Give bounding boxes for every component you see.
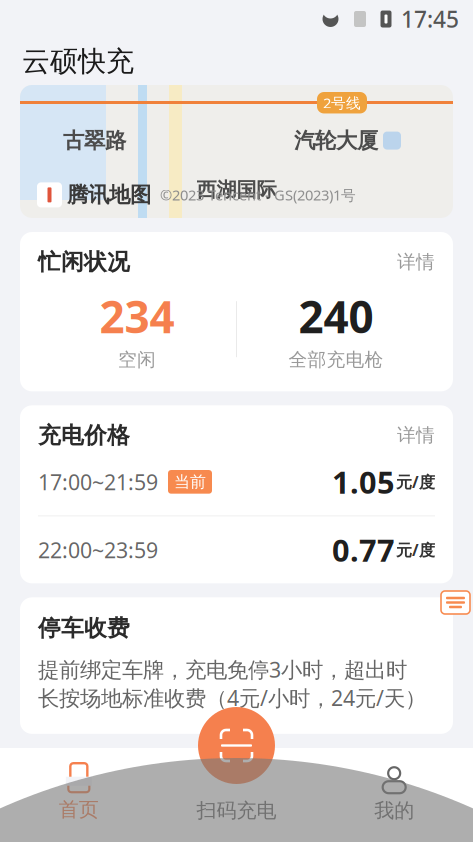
staticText: 扫码充电 bbox=[196, 798, 276, 823]
staticText: 汽轮大厦 bbox=[294, 127, 378, 154]
staticText: 详情 bbox=[397, 250, 435, 273]
staticText: 首页 bbox=[59, 797, 99, 822]
button[interactable]: 扫码充电 bbox=[198, 707, 275, 784]
staticText: 云硕快充 bbox=[22, 44, 134, 79]
staticText: 西湖国际 bbox=[196, 178, 276, 202]
staticText: 0.77 bbox=[332, 529, 395, 570]
staticText: ©2023 Tencent - GS(2023)1号 bbox=[160, 185, 356, 205]
staticText: 空闲 bbox=[118, 348, 156, 371]
button[interactable]: 详情 bbox=[397, 424, 435, 447]
staticText: 我的 bbox=[374, 798, 414, 823]
staticText: 详情 bbox=[397, 424, 435, 447]
staticText: 元/度 bbox=[396, 539, 435, 560]
staticText: 234 bbox=[99, 287, 174, 345]
staticText: 停车收费 bbox=[38, 614, 130, 642]
staticText: 元/度 bbox=[396, 471, 435, 492]
staticText: 当前 bbox=[174, 472, 206, 492]
staticText: 1.05 bbox=[332, 461, 395, 502]
staticText: 全部充电枪 bbox=[288, 348, 383, 371]
staticText: 古翠路 bbox=[63, 127, 126, 154]
button[interactable]: 我的 bbox=[315, 748, 473, 842]
staticText: 腾讯地图 bbox=[67, 182, 151, 208]
button[interactable]: Keyboard bbox=[441, 591, 470, 614]
staticText: 22:00~23:59 bbox=[38, 536, 158, 564]
staticText: 提前绑定车牌，充电免停3小时，超出时长按场地标准收费（4元/小时，24元/天） bbox=[38, 655, 426, 712]
button[interactable]: 详情 bbox=[397, 250, 435, 273]
staticText: 17:45 bbox=[401, 4, 459, 34]
staticText: 2号线 bbox=[323, 93, 361, 112]
staticText: 充电价格 bbox=[38, 421, 130, 449]
button[interactable]: 首页 bbox=[0, 748, 158, 842]
staticText: 240 bbox=[298, 287, 373, 345]
staticText: 忙闲状况 bbox=[38, 248, 130, 276]
button[interactable]: 扫码充电 bbox=[158, 748, 315, 842]
staticText: 17:00~21:59 bbox=[38, 468, 158, 496]
